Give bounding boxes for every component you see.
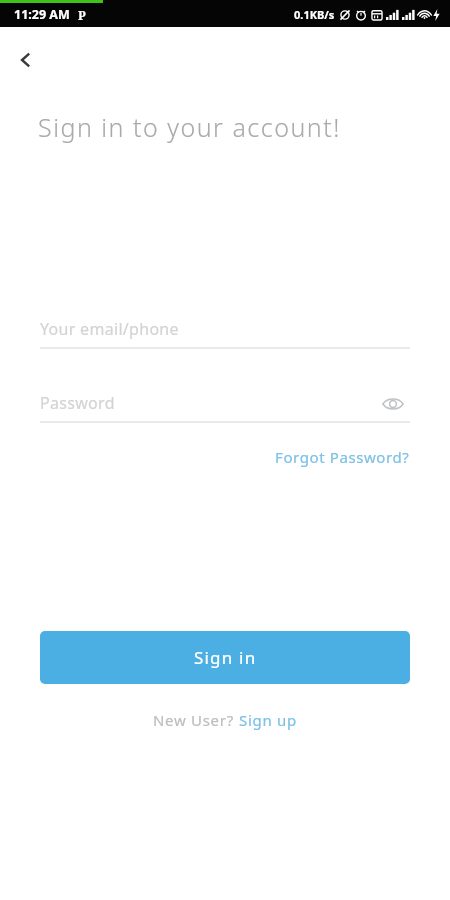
- staticText: 11:29 AM: [14, 6, 70, 23]
- staticText: Your email/phone: [40, 318, 179, 340]
- staticText: Sign in: [194, 646, 257, 669]
- staticText: 0.1KB/s: [294, 7, 335, 22]
- button[interactable]: Back: [4, 38, 48, 82]
- staticText: Sign up: [239, 710, 297, 730]
- button[interactable]: Password: [40, 382, 370, 424]
- staticText: New User?: [153, 710, 239, 730]
- button[interactable]: Sign up: [239, 710, 297, 730]
- staticText: Forgot Password?: [275, 447, 410, 467]
- staticText: Password: [40, 392, 115, 414]
- button[interactable]: Your email/phone: [40, 308, 410, 350]
- staticText: P: [78, 7, 86, 23]
- button[interactable]: Show password: [374, 385, 412, 423]
- button[interactable]: Sign in: [40, 631, 410, 684]
- button[interactable]: Forgot Password?: [240, 442, 410, 472]
- staticText: Sign in to your account!: [38, 110, 341, 144]
